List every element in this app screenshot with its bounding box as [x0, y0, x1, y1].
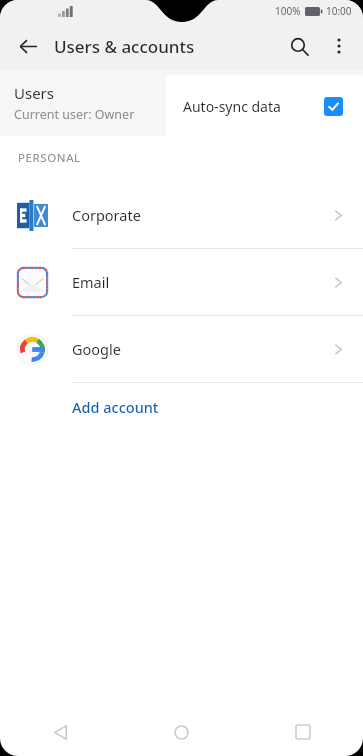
button[interactable]: More options	[319, 26, 359, 66]
button[interactable]: Back	[10, 28, 46, 64]
button[interactable]: Users	[0, 70, 363, 136]
button[interactable]: Back	[0, 708, 121, 756]
button[interactable]: Email	[0, 249, 363, 315]
button[interactable]: Google	[0, 316, 363, 382]
button[interactable]: Recent apps	[242, 708, 363, 756]
staticText: Users	[14, 83, 54, 103]
button[interactable]: Add account	[0, 383, 363, 431]
button[interactable]: Corporate	[0, 182, 363, 248]
button[interactable]: Auto-sync data	[166, 75, 363, 138]
button[interactable]: Search	[279, 26, 319, 66]
staticText: Add account	[72, 397, 159, 417]
staticText: 10:00	[326, 4, 352, 18]
staticText: Users & accounts	[54, 35, 195, 58]
staticText: Corporate	[72, 205, 141, 225]
staticText: Auto-sync data	[183, 97, 281, 116]
staticText: Current user: Owner	[14, 106, 135, 123]
staticText: Google	[72, 339, 121, 359]
button[interactable]: Home	[121, 708, 242, 756]
staticText: 100%	[275, 4, 301, 18]
staticText: PERSONAL	[18, 150, 81, 166]
staticText: Email	[72, 272, 110, 292]
